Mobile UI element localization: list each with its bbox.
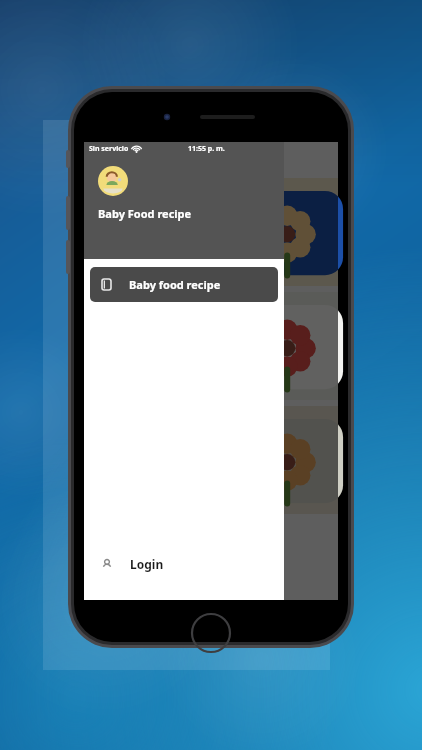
- button[interactable]: SNACK: [84, 292, 338, 400]
- button[interactable]: CUT MEAL: [84, 178, 338, 286]
- staticText: CUT MEAL: [94, 207, 153, 257]
- staticText: 11:55 p. m.: [188, 144, 225, 154]
- button[interactable]: Baby food recipe: [90, 267, 278, 302]
- other: Home: [190, 612, 232, 654]
- button[interactable]: Login: [84, 544, 284, 584]
- staticText: Baby Food recipe: [98, 206, 192, 221]
- staticText: Baby food recipe: [129, 277, 221, 292]
- staticText: Sin servicio: [89, 144, 129, 154]
- button[interactable]: [84, 406, 338, 514]
- staticText: Login: [130, 556, 164, 572]
